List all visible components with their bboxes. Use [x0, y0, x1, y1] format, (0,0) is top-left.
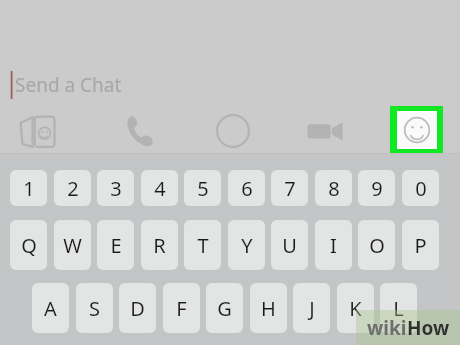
staticText: 3 — [110, 175, 122, 202]
staticText: 5 — [197, 175, 209, 202]
button[interactable]: Camera — [213, 112, 253, 150]
button[interactable]: 5 — [184, 170, 221, 206]
staticText: How — [407, 315, 450, 341]
button[interactable]: Stickers and emoji — [390, 106, 443, 154]
button[interactable]: H — [250, 283, 287, 333]
button[interactable]: Stickers — [18, 112, 62, 150]
staticText: L — [393, 295, 404, 322]
staticText: H — [261, 295, 276, 322]
staticText: U — [282, 232, 297, 259]
button[interactable]: Q — [10, 220, 47, 270]
button[interactable]: 1 — [10, 170, 47, 206]
button[interactable]: D — [119, 283, 156, 333]
staticText: 0 — [415, 175, 427, 202]
staticText: T — [197, 232, 209, 259]
button[interactable]: 9 — [358, 170, 395, 206]
button[interactable]: 7 — [271, 170, 308, 206]
button[interactable]: Y — [228, 220, 265, 270]
button[interactable]: P — [402, 220, 439, 270]
staticText: F — [176, 295, 187, 322]
button[interactable]: R — [141, 220, 178, 270]
button[interactable]: G — [206, 283, 243, 333]
button[interactable]: S — [76, 283, 113, 333]
button[interactable]: I — [315, 220, 352, 270]
staticText: J — [309, 295, 315, 322]
staticText: O — [369, 232, 385, 259]
staticText: P — [414, 232, 427, 259]
button[interactable]: T — [184, 220, 221, 270]
staticText: 9 — [371, 175, 383, 202]
button[interactable]: 8 — [315, 170, 352, 206]
button[interactable]: 6 — [228, 170, 265, 206]
staticText: E — [110, 232, 122, 259]
button[interactable]: 4 — [141, 170, 178, 206]
staticText: 7 — [284, 175, 296, 202]
staticText: A — [44, 295, 57, 322]
button[interactable]: 0 — [402, 170, 439, 206]
button[interactable]: Video call — [303, 112, 347, 150]
staticText: R — [153, 232, 166, 259]
button[interactable]: O — [358, 220, 395, 270]
button[interactable]: Call — [120, 112, 160, 150]
staticText: Q — [21, 232, 37, 259]
staticText: Send a Chat — [15, 72, 122, 98]
button[interactable]: J — [293, 283, 330, 333]
staticText: 8 — [328, 175, 340, 202]
staticText: W — [63, 232, 82, 259]
staticText: 1 — [23, 175, 35, 202]
staticText: 2 — [67, 175, 79, 202]
button[interactable]: F — [163, 283, 200, 333]
button[interactable]: A — [32, 283, 69, 333]
button[interactable]: Send a Chat — [0, 62, 460, 106]
button[interactable]: W — [54, 220, 91, 270]
staticText: wiki — [367, 315, 407, 341]
staticText: K — [349, 295, 362, 322]
staticText: 6 — [241, 175, 253, 202]
button[interactable]: E — [97, 220, 134, 270]
button[interactable]: 3 — [97, 170, 134, 206]
button[interactable]: L — [380, 283, 417, 333]
button[interactable]: 2 — [54, 170, 91, 206]
staticText: G — [217, 295, 232, 322]
button[interactable]: K — [337, 283, 374, 333]
button[interactable]: U — [271, 220, 308, 270]
staticText: Y — [241, 232, 253, 259]
staticText: D — [130, 295, 145, 322]
staticText: S — [89, 295, 100, 322]
staticText: I — [330, 232, 337, 259]
staticText: 4 — [154, 175, 166, 202]
